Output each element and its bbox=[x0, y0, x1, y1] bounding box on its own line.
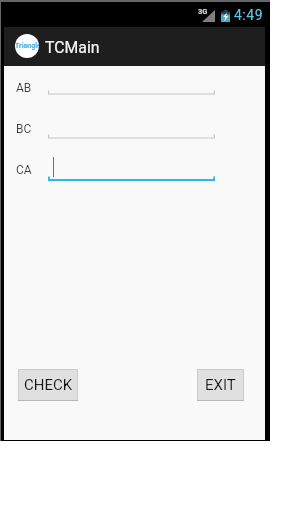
staticText: Triangle bbox=[15, 42, 39, 50]
button[interactable] bbox=[48, 70, 215, 96]
staticText: 3G bbox=[198, 7, 208, 16]
staticText: 4:49 bbox=[234, 7, 263, 23]
staticText: CA bbox=[16, 163, 32, 177]
button[interactable] bbox=[48, 156, 215, 182]
button[interactable]: EXIT bbox=[197, 369, 244, 401]
staticText: EXIT bbox=[205, 376, 236, 394]
button[interactable]: CHECK bbox=[18, 369, 78, 401]
staticText: CHECK bbox=[24, 376, 73, 394]
other: App icon bbox=[15, 34, 39, 58]
staticText: BC bbox=[16, 122, 32, 136]
staticText: TCMain bbox=[45, 38, 100, 57]
button[interactable] bbox=[48, 114, 215, 140]
staticText: AB bbox=[16, 81, 32, 95]
